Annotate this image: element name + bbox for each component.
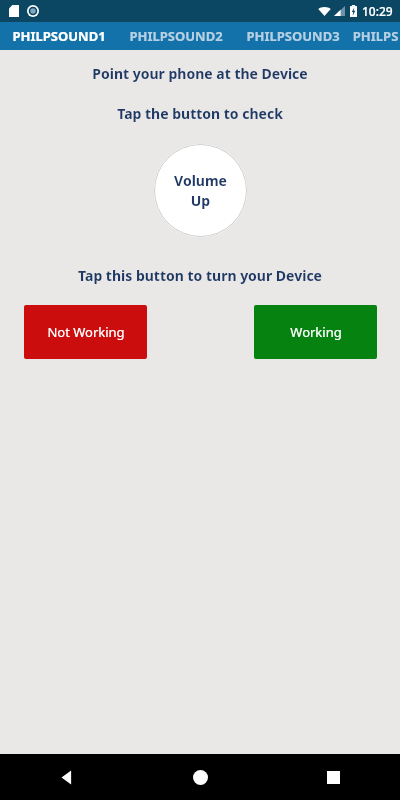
staticText: Not Working [47,323,125,341]
button[interactable]: Back [0,754,134,800]
button[interactable]: PHILPSOUND2 [117,22,234,50]
staticText: Tap this button to turn your Device [78,266,322,285]
button[interactable]: PHILPSOUND1 [0,22,117,50]
staticText: Tap the button to check [117,104,283,123]
button[interactable]: Volume Up [154,144,247,237]
button[interactable]: Working [254,305,377,359]
staticText: PHILPSOUND4 [351,27,400,45]
staticText: PHILPSOUND2 [129,27,223,45]
staticText: Volume Up [174,171,227,210]
staticText: Working [290,323,342,341]
button[interactable]: Recent apps [267,754,400,800]
button[interactable]: Not Working [24,305,147,359]
button[interactable]: PHILPSOUND3 [234,22,351,50]
button[interactable]: Home [134,754,267,800]
staticText: PHILPSOUND3 [246,27,340,45]
staticText: PHILPSOUND1 [12,27,106,45]
staticText: 10:29 [362,3,393,19]
staticText: Point your phone at the Device [92,64,308,83]
button[interactable]: PHILPSOUND4 [351,22,400,50]
